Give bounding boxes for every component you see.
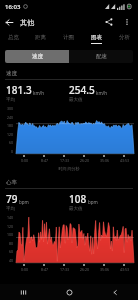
button[interactable]: 距离 (27, 31, 54, 46)
button[interactable]: 配速 (69, 50, 133, 63)
staticText: 最大值 (69, 97, 83, 103)
button[interactable]: Back (92, 284, 138, 300)
staticText: 181.3 (6, 83, 32, 97)
staticText: 时间 间分秒 (58, 166, 80, 171)
staticText: 17:33 (60, 267, 69, 272)
staticText: 79 (6, 192, 18, 206)
staticText: 分析 (119, 34, 130, 41)
button[interactable]: 计圈 (54, 31, 82, 46)
staticText: 距离 (35, 34, 46, 41)
staticText: 100 (7, 232, 14, 237)
button[interactable]: Recent apps (0, 284, 46, 300)
button[interactable]: More options (118, 13, 136, 31)
button[interactable]: 速度 (5, 50, 69, 63)
staticText: 26:20 (80, 267, 89, 272)
staticText: 总览 (8, 34, 19, 41)
staticText: km/h (96, 90, 108, 96)
staticText: 其他 (20, 18, 34, 27)
staticText: 26:20 (80, 158, 89, 163)
staticText: 0 (11, 149, 14, 154)
staticText: km/h (33, 90, 45, 96)
staticText: 8:47 (41, 158, 48, 163)
staticText: bpm (19, 199, 29, 205)
button[interactable]: Home (46, 284, 92, 300)
staticText: 120 (7, 132, 14, 137)
staticText: 16:03 (5, 3, 21, 11)
staticText: 计圈 (63, 34, 74, 41)
staticText: 40 (9, 258, 14, 263)
staticText: 108 (69, 192, 87, 206)
staticText: 60 (9, 249, 14, 254)
staticText: 平均 (6, 97, 15, 103)
staticText: 120 (7, 224, 14, 229)
staticText: bpm (88, 199, 98, 205)
staticText: 43:53 (120, 158, 129, 163)
staticText: 速度 (32, 53, 43, 60)
staticText: 35:06 (100, 267, 109, 272)
staticText: 140 (7, 215, 14, 220)
button[interactable]: 分析 (110, 31, 138, 46)
staticText: 80 (9, 241, 14, 246)
staticText: 心率 (6, 179, 17, 186)
staticText: 平均 (6, 206, 15, 212)
staticText: 17:33 (60, 158, 69, 163)
staticText: 300 (7, 106, 14, 111)
staticText: 速度 (6, 70, 17, 77)
staticText: 0:00 (21, 267, 28, 272)
staticText: 254.5 (69, 83, 95, 97)
staticText: 43:53 (120, 267, 129, 272)
staticText: 180 (7, 123, 14, 128)
staticText: 图表 (91, 34, 102, 41)
button[interactable]: Share (100, 13, 118, 31)
staticText: 配速 (96, 53, 107, 60)
button[interactable]: 图表 (82, 31, 110, 46)
button[interactable]: 总览 (0, 31, 27, 46)
staticText: 240 (7, 115, 14, 120)
staticText: 8:47 (41, 267, 48, 272)
staticText: 0:00 (21, 158, 28, 163)
staticText: 35:06 (100, 158, 109, 163)
button[interactable]: Back (0, 13, 18, 31)
staticText: 60 (9, 140, 14, 145)
staticText: 最大值 (69, 206, 83, 212)
